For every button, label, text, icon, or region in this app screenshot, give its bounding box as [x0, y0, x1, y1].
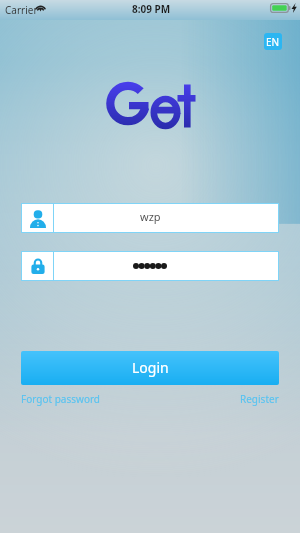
button[interactable]: Language EN [264, 33, 282, 50]
staticText: Carrier [5, 3, 38, 17]
staticText: Register [240, 392, 279, 406]
staticText: Forgot password [21, 392, 101, 406]
staticText: Login [132, 358, 169, 377]
button[interactable]: Register [240, 392, 279, 406]
button[interactable] [54, 204, 278, 232]
button[interactable]: Forgot password [21, 392, 101, 406]
staticText: wzp [140, 209, 161, 224]
staticText: 8:09 PM [132, 2, 171, 16]
button[interactable]: Login [21, 351, 279, 385]
button[interactable] [54, 252, 278, 280]
staticText: EN [266, 35, 280, 49]
